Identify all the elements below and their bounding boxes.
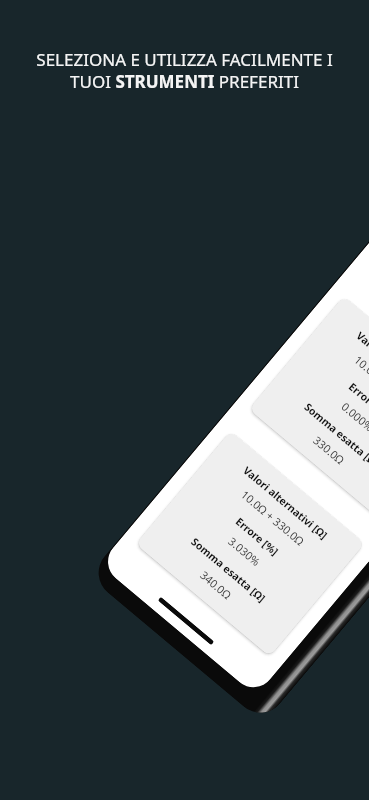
staticText: Errore [%] — [233, 514, 281, 558]
staticText: 0.000% — [338, 398, 369, 434]
staticText: Somma esatta [Ω] — [188, 534, 268, 605]
button[interactable]: Valori alternativi [Ω] — [136, 431, 365, 657]
staticText: Errore [%] — [346, 379, 369, 424]
staticText: 330.0Ω — [310, 432, 348, 467]
staticText: SELEZIONA E UTILIZZA FACILMENTE I TUOI S… — [36, 48, 333, 93]
staticText: 10.0Ω + 330.0Ω — [351, 352, 369, 414]
staticText: Valori alternativi [Ω] — [240, 463, 330, 542]
staticText: Somma esatta [Ω] — [301, 400, 369, 470]
staticText: 3.030% — [225, 533, 264, 569]
button[interactable]: Valori alternativi [Ω] — [249, 296, 369, 522]
staticText: 10.0Ω + 330.0Ω — [238, 487, 307, 548]
staticText: Valori alternativi [Ω] — [353, 328, 369, 407]
staticText: 340.0Ω — [197, 567, 235, 602]
